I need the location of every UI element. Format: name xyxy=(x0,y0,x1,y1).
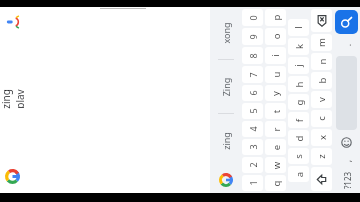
staticText: t xyxy=(269,109,282,113)
staticText: 9 xyxy=(247,34,259,40)
staticText: 3 xyxy=(247,144,259,150)
button[interactable]: 4 xyxy=(242,121,263,137)
staticText: 8 xyxy=(247,53,259,59)
staticText: i xyxy=(269,54,282,57)
button[interactable]: 9 xyxy=(242,28,263,45)
staticText: j xyxy=(292,64,305,67)
button[interactable]: x xyxy=(311,129,332,146)
button[interactable]: , xyxy=(334,153,359,168)
button[interactable]: 7 xyxy=(242,66,263,83)
staticText: xong xyxy=(220,22,232,44)
staticText: y xyxy=(269,91,282,96)
button[interactable]: b xyxy=(311,72,332,89)
staticText: , xyxy=(340,159,352,162)
staticText: b xyxy=(315,77,328,83)
staticText: zingplay xyxy=(1,87,24,110)
staticText: a xyxy=(292,171,305,177)
staticText: g xyxy=(292,99,305,105)
staticText: ?123 xyxy=(341,171,352,189)
staticText: 2 xyxy=(247,162,259,168)
button[interactable]: 6 xyxy=(242,85,263,101)
staticText: z xyxy=(315,154,328,159)
button[interactable]: ?123 xyxy=(334,170,359,191)
staticText: Zing xyxy=(219,77,231,96)
button[interactable] xyxy=(311,9,332,32)
button[interactable]: h xyxy=(288,76,309,92)
staticText: p xyxy=(269,14,282,20)
staticText: 7 xyxy=(247,72,259,78)
button[interactable]: 5 xyxy=(242,103,263,119)
staticText: m xyxy=(315,38,328,47)
staticText: zing xyxy=(220,132,232,150)
button[interactable]: . xyxy=(334,37,359,52)
button[interactable]: 8 xyxy=(242,47,263,64)
button[interactable]: s xyxy=(288,148,309,164)
button[interactable]: y xyxy=(265,85,286,101)
button[interactable]: Search zingplay xyxy=(1,10,24,189)
staticText: e xyxy=(269,144,282,150)
staticText: d xyxy=(292,135,305,141)
staticText: h xyxy=(292,81,305,87)
staticText: x xyxy=(315,134,328,140)
button[interactable]: Google xyxy=(210,167,241,193)
staticText: 6 xyxy=(247,90,259,96)
button[interactable]: a xyxy=(288,166,309,182)
button[interactable]: 3 xyxy=(242,139,263,155)
button[interactable]: u xyxy=(265,66,286,83)
staticText: c xyxy=(315,116,328,121)
staticText: s xyxy=(292,154,305,159)
button[interactable]: v xyxy=(311,91,332,108)
button[interactable]: Zing xyxy=(210,60,241,113)
button[interactable]: Search xyxy=(335,10,358,34)
button[interactable]: g xyxy=(288,94,309,110)
button[interactable]: e xyxy=(265,139,286,155)
staticText: 0 xyxy=(247,15,259,21)
staticText: v xyxy=(315,97,328,102)
button[interactable]: d xyxy=(288,130,309,146)
button[interactable]: xong xyxy=(210,7,241,59)
staticText: o xyxy=(269,33,282,39)
staticText: n xyxy=(315,58,328,64)
button[interactable]: r xyxy=(265,121,286,137)
staticText: q xyxy=(269,180,282,186)
staticText: w xyxy=(269,161,282,169)
staticText: r xyxy=(269,127,282,131)
button[interactable]: k xyxy=(288,38,309,55)
button[interactable]: j xyxy=(288,57,309,74)
button[interactable]: p xyxy=(265,9,286,26)
button[interactable]: t xyxy=(265,103,286,119)
staticText: 4 xyxy=(247,126,259,132)
button[interactable]: i xyxy=(265,47,286,64)
button[interactable]: z xyxy=(311,148,332,165)
button[interactable]: w xyxy=(265,157,286,173)
button[interactable]: Emoji xyxy=(333,133,360,152)
staticText: k xyxy=(292,43,305,49)
button[interactable]: l xyxy=(288,19,309,36)
button[interactable]: 1 xyxy=(242,175,263,191)
staticText: u xyxy=(269,71,282,77)
button[interactable]: zing xyxy=(210,114,241,167)
button[interactable]: f xyxy=(288,112,309,128)
button[interactable]: 2 xyxy=(242,157,263,173)
staticText: f xyxy=(292,118,305,122)
staticText: 1 xyxy=(247,180,259,186)
button[interactable]: 0 xyxy=(242,9,263,26)
button[interactable]: c xyxy=(311,110,332,127)
button[interactable]: n xyxy=(311,53,332,70)
button[interactable]: q xyxy=(265,175,286,191)
staticText: l xyxy=(292,26,305,29)
staticText: 5 xyxy=(247,108,259,114)
button[interactable] xyxy=(311,167,332,191)
button[interactable]: m xyxy=(311,34,332,51)
button[interactable]: o xyxy=(265,28,286,45)
staticText: . xyxy=(340,43,352,46)
